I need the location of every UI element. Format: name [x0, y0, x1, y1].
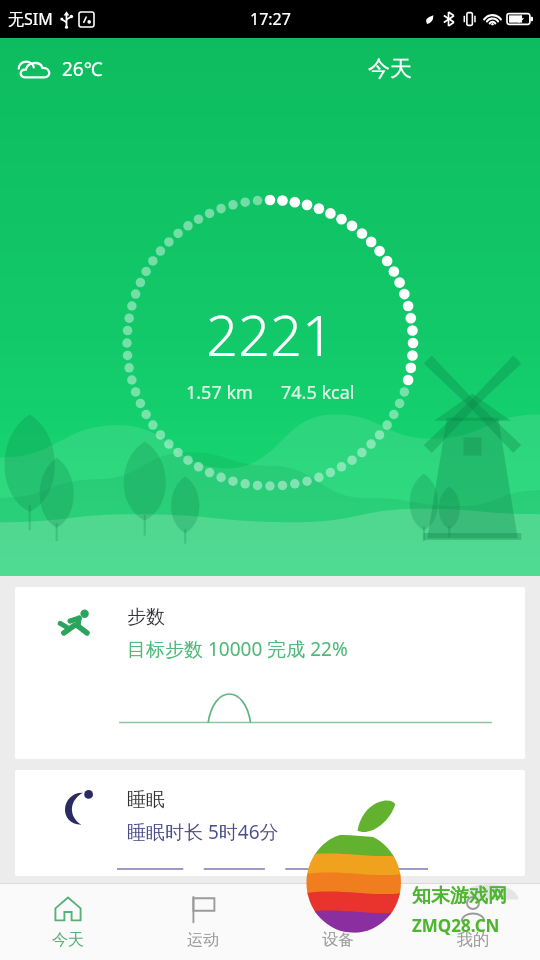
button[interactable]: 我的	[405, 884, 540, 960]
staticText: 睡眠	[127, 788, 165, 812]
button[interactable]: 运动	[135, 884, 270, 960]
staticText: 2221	[206, 296, 334, 372]
staticText: 步数	[127, 605, 165, 629]
staticText: ZMQ28.CN	[412, 914, 500, 937]
staticText: 设备	[322, 930, 354, 950]
staticText: 无SIM	[8, 8, 53, 30]
staticText: 1.57 km	[186, 380, 253, 405]
staticText: 睡眠时长 5时46分	[127, 819, 279, 845]
button[interactable]: Weather, 26 degrees	[18, 56, 103, 82]
staticText: 26℃	[62, 56, 103, 82]
staticText: 目标步数 10000 完成 22%	[127, 636, 348, 662]
button[interactable]: 步数	[15, 587, 525, 759]
button[interactable]: 设备	[270, 884, 405, 960]
staticText: 我的	[457, 930, 489, 950]
staticText: 74.5 kcal	[281, 380, 355, 405]
staticText: 知末游戏网	[412, 884, 507, 908]
staticText: 今天	[368, 55, 412, 83]
staticText: 今天	[52, 930, 84, 950]
staticText: 17:27	[250, 8, 291, 30]
button[interactable]: 睡眠	[15, 770, 525, 876]
staticText: 运动	[187, 930, 219, 950]
button[interactable]: 今天	[0, 884, 135, 960]
